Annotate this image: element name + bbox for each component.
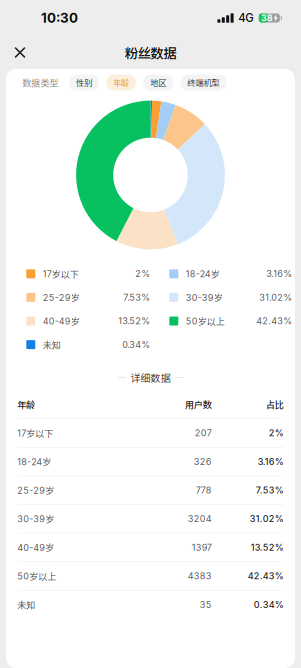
staticText: 0.34% [122, 339, 150, 350]
staticText: 占比 [266, 398, 284, 411]
staticText: 18-24岁 [17, 455, 51, 468]
staticText: 13.52% [118, 315, 150, 326]
staticText: 10:30 [41, 10, 78, 26]
staticText: 778 [196, 485, 212, 496]
staticText: 38 [261, 13, 273, 23]
staticText: 2% [135, 268, 150, 279]
staticText: 年龄 [17, 398, 35, 411]
staticText: 35 [200, 599, 212, 610]
staticText: 4G [238, 11, 253, 25]
staticText: 终端机型 [187, 76, 219, 88]
staticText: 性别 [76, 76, 92, 88]
staticText: 地区 [150, 76, 166, 88]
staticText: 3.16% [266, 268, 292, 279]
staticText: 25-29岁 [17, 484, 54, 497]
staticText: 粉丝数据 [124, 43, 176, 62]
staticText: 326 [194, 456, 212, 467]
button[interactable]: 地区 [143, 74, 173, 90]
staticText: 年龄 [113, 76, 129, 88]
staticText: 未知 [17, 598, 35, 611]
staticText: 207 [195, 427, 212, 438]
staticText: 3.16% [258, 456, 284, 467]
staticText: 7.53% [256, 485, 284, 496]
button[interactable]: Close [7, 39, 33, 65]
staticText: 42.43% [248, 570, 284, 581]
staticText: 25-29岁 [43, 291, 80, 304]
staticText: 0.34% [254, 599, 284, 610]
staticText: 40-49岁 [43, 314, 80, 327]
staticText: 50岁以上 [186, 314, 225, 327]
staticText: 50岁以上 [17, 569, 56, 582]
staticText: 3204 [188, 513, 212, 524]
staticText: 2% [269, 427, 284, 438]
staticText: 31.02% [259, 292, 292, 303]
staticText: 17岁以下 [17, 426, 53, 439]
staticText: 42.43% [256, 315, 292, 326]
staticText: 7.53% [123, 292, 150, 303]
staticText: 4383 [188, 570, 212, 581]
staticText: 31.02% [250, 513, 284, 524]
staticText: 未知 [43, 338, 61, 351]
button[interactable]: 性别 [69, 74, 99, 90]
button[interactable]: 终端机型 [180, 74, 227, 90]
staticText: 用户数 [185, 398, 212, 411]
staticText: 13.52% [251, 542, 284, 553]
staticText: 30-39岁 [186, 291, 223, 304]
staticText: 30-39岁 [17, 512, 54, 525]
staticText: 40-49岁 [17, 541, 54, 554]
button[interactable]: 年龄 [106, 74, 136, 90]
staticText: 1397 [192, 542, 212, 553]
staticText: 数据类型 [22, 76, 58, 89]
staticText: 详细数据 [130, 370, 170, 385]
staticText: 18-24岁 [186, 267, 220, 280]
staticText: 17岁以下 [43, 267, 79, 280]
